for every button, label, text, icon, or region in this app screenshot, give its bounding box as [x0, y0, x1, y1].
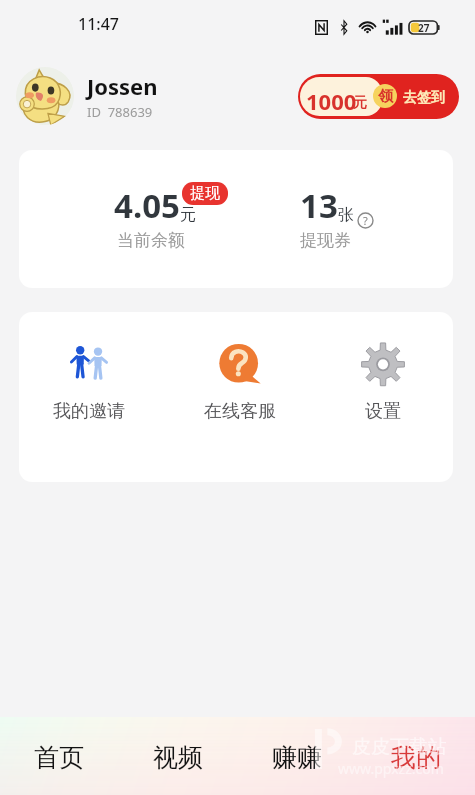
staticText: 去签到 [403, 89, 445, 107]
staticText: 皮皮下载站 [352, 735, 447, 759]
staticText: ? [363, 213, 368, 228]
staticText: 提现券 [300, 230, 351, 251]
staticText: 视频 [153, 742, 203, 773]
button[interactable]: Avatar [16, 67, 74, 125]
button[interactable]: 我的邀请 [45, 343, 133, 423]
staticText: 提现 [190, 184, 220, 203]
staticText: 首页 [34, 742, 84, 773]
staticText: 当前余额 [117, 230, 185, 251]
staticText: 4.05 [114, 183, 180, 228]
button[interactable]: 首页 [0, 717, 118, 795]
staticText: 元 [180, 205, 196, 225]
staticText: ID 788639 [87, 103, 153, 121]
button[interactable]: Help [357, 212, 374, 229]
staticText: www.ppxzz.com [338, 759, 444, 778]
button[interactable]: 赚赚 [237, 717, 356, 795]
staticText: 在线客服 [204, 400, 276, 423]
staticText: 设置 [365, 400, 401, 423]
staticText: Jossen [87, 71, 158, 101]
button[interactable]: 提现 [182, 182, 228, 205]
staticText: 我的邀请 [53, 400, 125, 423]
button[interactable]: 视频 [118, 717, 237, 795]
staticText: 张 [338, 205, 354, 225]
button[interactable]: 1000 [298, 74, 459, 119]
staticText: 1000 [306, 86, 357, 116]
button[interactable]: 我的 [356, 717, 475, 795]
staticText: 领 [378, 87, 393, 106]
staticText: 13 [300, 183, 338, 228]
staticText: 11:47 [78, 13, 119, 35]
button[interactable]: 设置 [339, 343, 427, 423]
staticText: 赚赚 [272, 742, 322, 773]
staticText: 元 [353, 94, 367, 112]
staticText: 我的 [391, 742, 441, 773]
staticText: 27 [418, 21, 430, 34]
button[interactable]: 在线客服 [196, 343, 284, 423]
